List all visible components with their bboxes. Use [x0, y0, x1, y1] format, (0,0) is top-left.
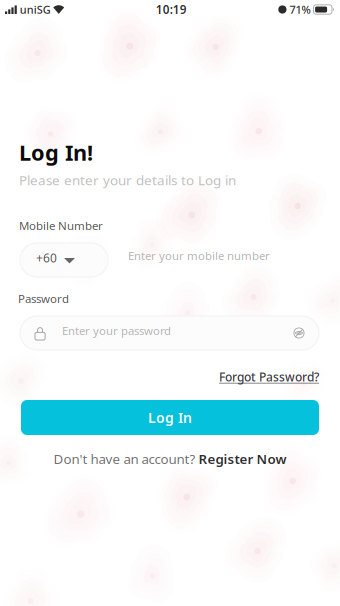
- staticText: Please enter your details to Log in: [19, 171, 236, 189]
- staticText: Register Now: [198, 450, 286, 468]
- button[interactable]: Log In: [21, 400, 319, 435]
- staticText: Password: [18, 291, 69, 306]
- button[interactable]: +60: [20, 243, 108, 277]
- button[interactable]: Forgot Password?: [219, 369, 319, 385]
- button[interactable]: Show password: [288, 322, 310, 344]
- staticText: Forgot Password?: [219, 369, 319, 385]
- staticText: Mobile Number: [19, 218, 103, 233]
- staticText: Log In!: [19, 138, 93, 167]
- staticText: +60: [36, 250, 57, 266]
- staticText: Enter your mobile number: [128, 248, 270, 263]
- staticText: Don't have an account?: [53, 450, 198, 468]
- staticText: 10:19: [156, 2, 187, 17]
- button[interactable]: Register Now: [198, 450, 286, 468]
- staticText: Enter your password: [62, 323, 171, 338]
- staticText: 71%: [289, 2, 310, 17]
- staticText: Log In: [148, 408, 192, 427]
- staticText: uniSG: [20, 2, 51, 17]
